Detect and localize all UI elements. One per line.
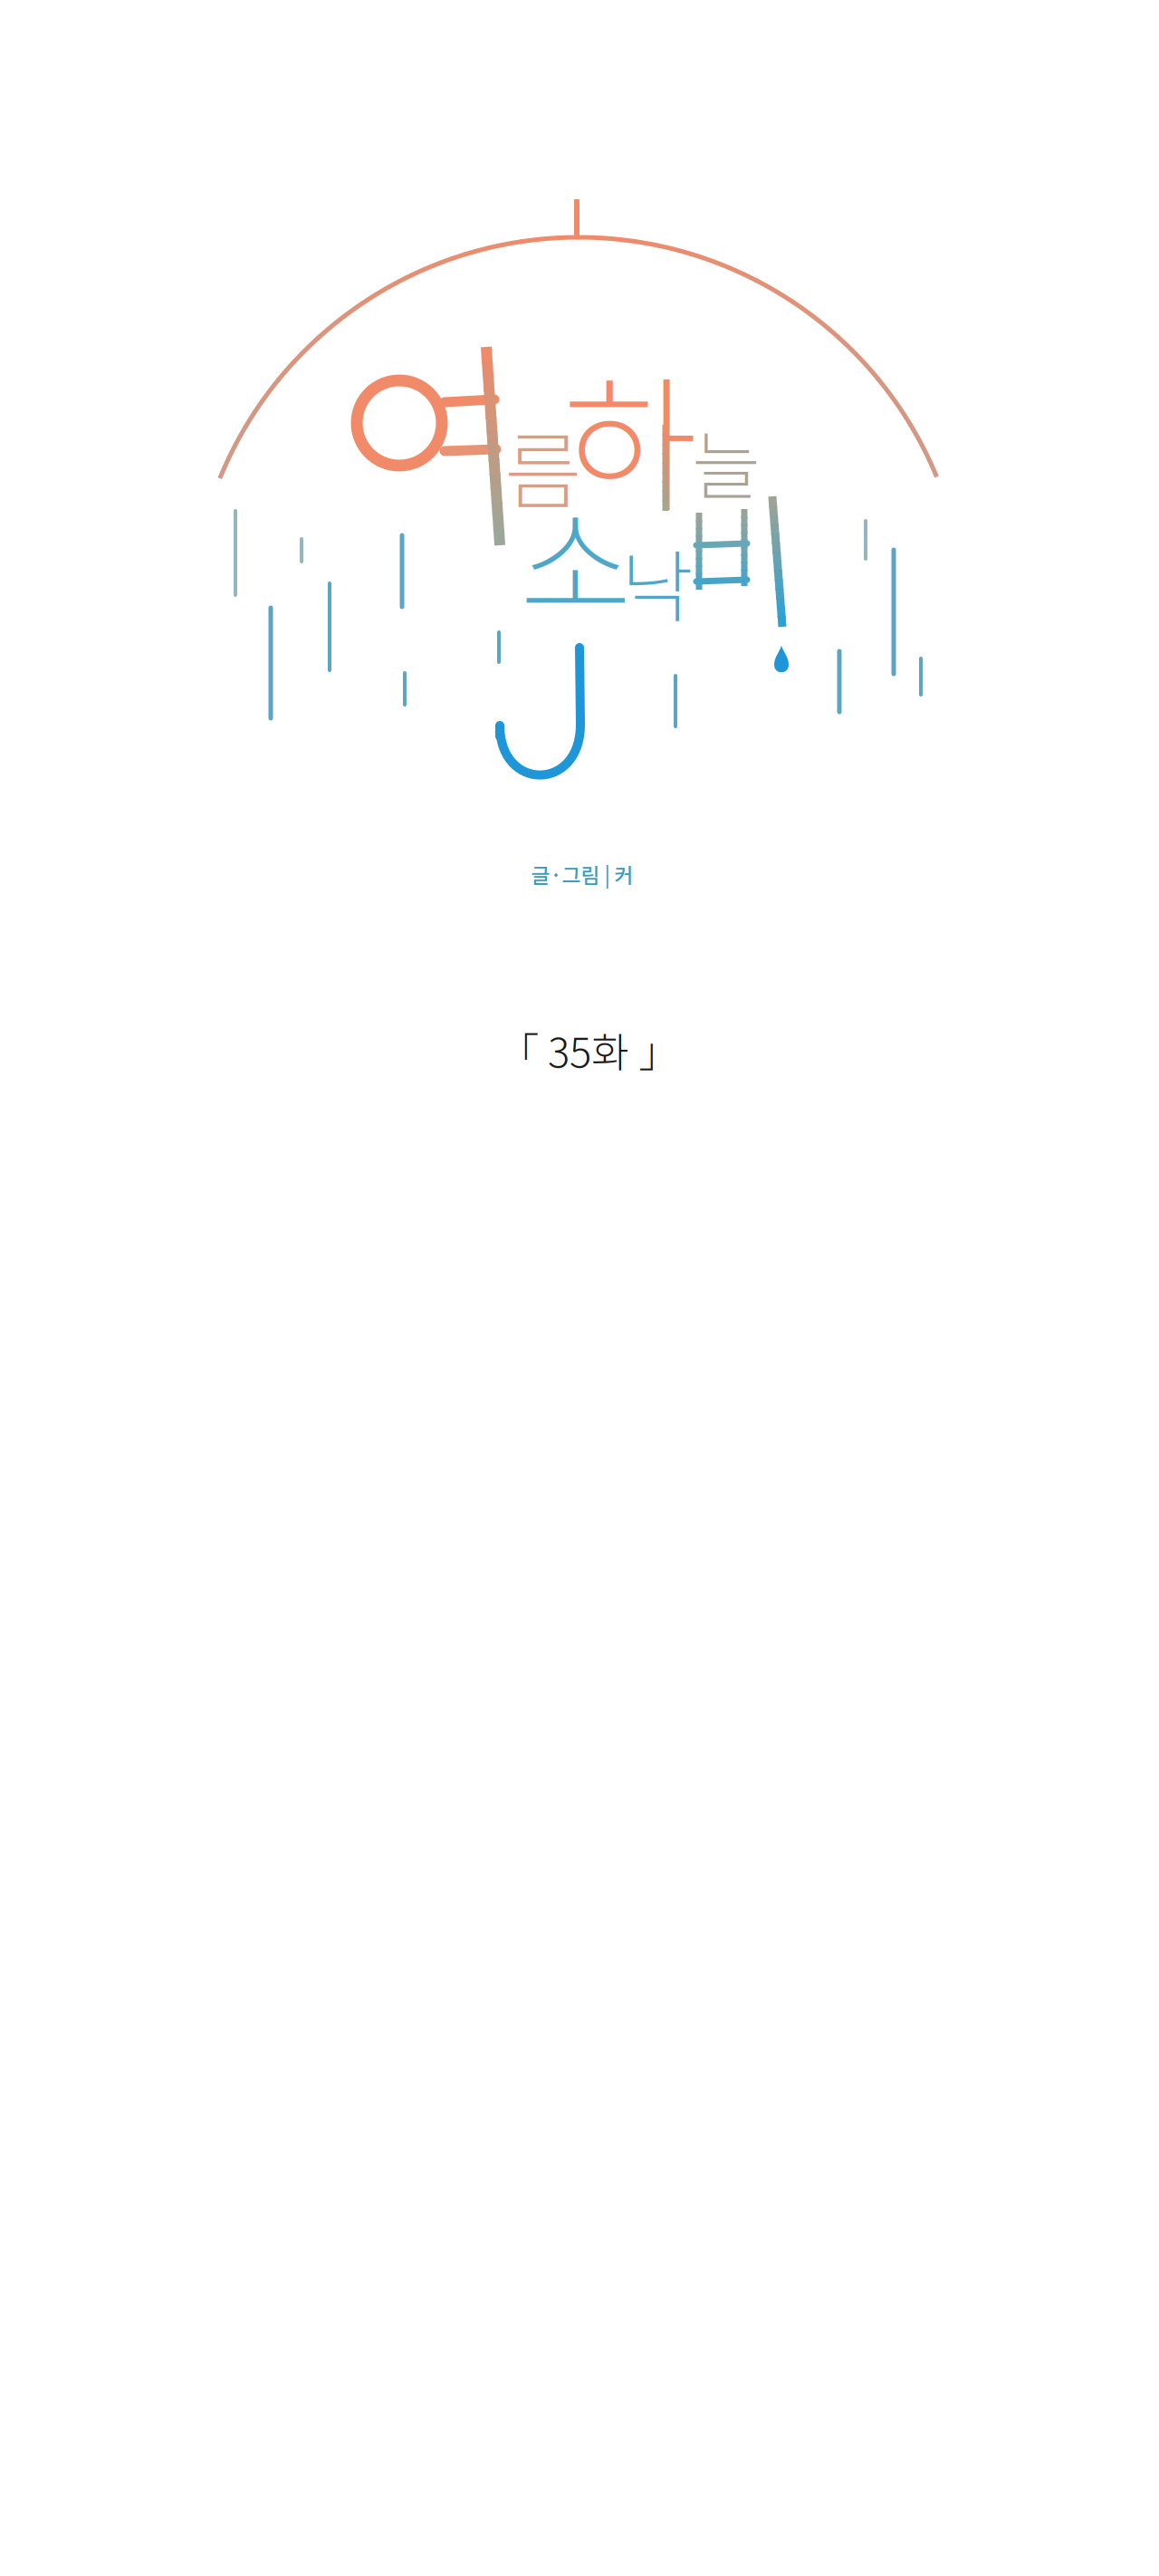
staticText: 글·그림 | 커: [531, 859, 633, 889]
staticText: 늘: [692, 407, 761, 515]
staticText: 하: [562, 329, 698, 542]
staticText: 「 35화 」: [498, 1020, 679, 1079]
staticText: 름: [504, 404, 582, 527]
staticText: 소: [520, 468, 632, 644]
staticText: 낙: [621, 525, 694, 638]
